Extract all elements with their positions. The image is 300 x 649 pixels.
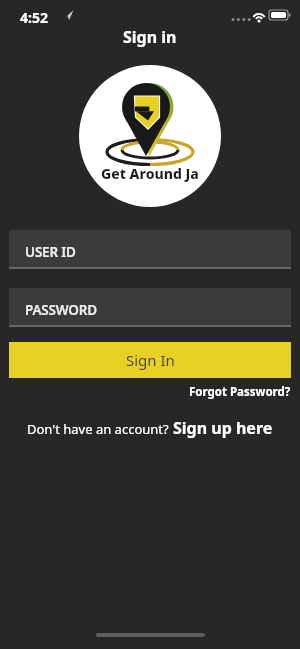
button[interactable]: Don't have an account? — [27, 417, 273, 439]
staticText: Get Around Ja — [101, 164, 199, 183]
staticText: PASSWORD — [25, 301, 97, 319]
staticText: Sign up here — [173, 417, 273, 439]
button[interactable]: PASSWORD — [9, 288, 291, 327]
staticText: Sign In — [126, 350, 175, 370]
button[interactable]: USER ID — [9, 230, 291, 269]
staticText: 4:52 — [20, 8, 48, 27]
button[interactable]: Forgot Password? — [189, 384, 291, 400]
staticText: Forgot Password? — [189, 384, 291, 400]
staticText: USER ID — [25, 243, 76, 261]
staticText: Sign in — [123, 26, 177, 48]
button[interactable]: Sign In — [9, 342, 291, 378]
staticText: Don't have an account? — [27, 420, 173, 438]
